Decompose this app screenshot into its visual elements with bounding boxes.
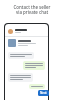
staticText: Contact the seller via private chat <box>0 4 64 16</box>
staticText: Next <box>40 91 47 95</box>
button[interactable]: Next <box>38 90 49 96</box>
